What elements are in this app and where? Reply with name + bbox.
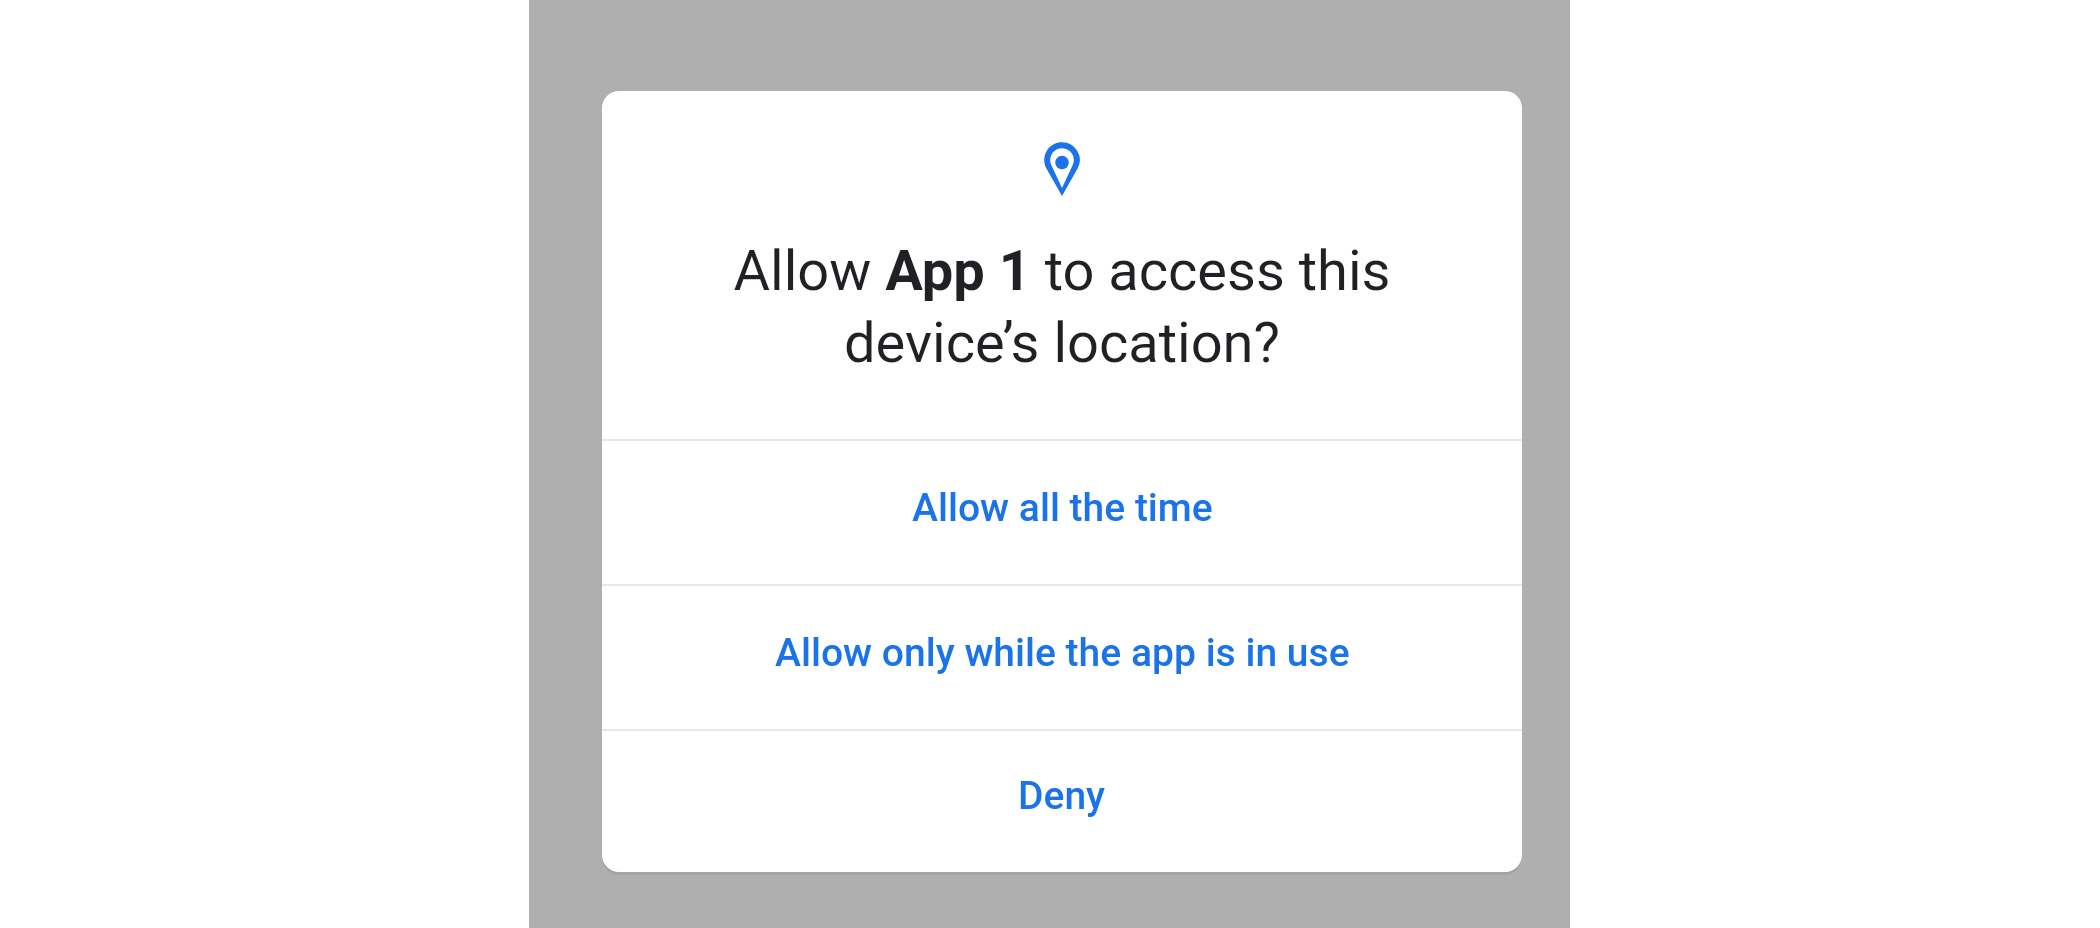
button[interactable]: Allow only while the app is in use: [602, 586, 1522, 729]
button[interactable]: Allow all the time: [602, 441, 1522, 584]
staticText: Allow App 1 to access this device’s loca…: [602, 238, 1522, 376]
staticText: Allow all the time: [912, 485, 1213, 531]
staticText: Deny: [1018, 773, 1106, 819]
button[interactable]: Deny: [602, 731, 1522, 870]
staticText: Allow only while the app is in use: [775, 630, 1350, 676]
